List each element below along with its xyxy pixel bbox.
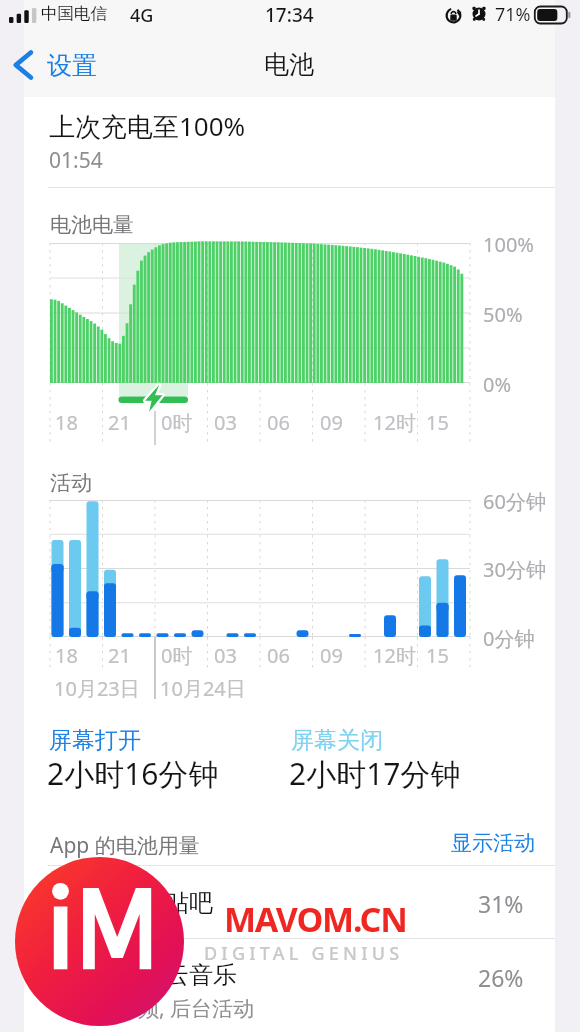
staticText: App 的电池用量 — [50, 831, 200, 860]
staticText: 0% — [483, 371, 512, 398]
staticText: 18 — [55, 642, 78, 669]
staticText: 50% — [483, 301, 523, 328]
staticText: 60分钟 — [483, 488, 546, 515]
staticText: 06 — [267, 409, 290, 436]
staticText: 21 — [108, 409, 131, 436]
staticText: 10月23日 — [54, 675, 140, 702]
staticText: 26% — [478, 962, 524, 993]
staticText: 4G — [130, 3, 154, 28]
staticText: 01:54 — [49, 146, 103, 175]
staticText: 09 — [320, 409, 343, 436]
staticText: 31% — [478, 888, 524, 919]
staticText: 03 — [214, 409, 237, 436]
button[interactable]: 网易云音乐 — [24, 940, 555, 1012]
staticText: 设置 — [47, 50, 97, 81]
staticText: DIGITAL GENIUS — [204, 941, 404, 966]
staticText: 显示活动 — [451, 830, 535, 856]
staticText: 0分钟 — [483, 625, 535, 652]
staticText: 2小时16分钟 — [47, 753, 219, 794]
staticText: 2小时17分钟 — [289, 753, 461, 794]
staticText: 15 — [426, 409, 449, 436]
staticText: 15 — [426, 642, 449, 669]
staticText: 活动 — [50, 470, 92, 496]
staticText: MAVOM.CN — [224, 896, 407, 942]
staticText: 中国电信 — [41, 3, 107, 24]
staticText: 百度贴吧 — [117, 888, 213, 918]
staticText: 03 — [214, 642, 237, 669]
other: Alarm — [470, 5, 488, 23]
staticText: 电池 — [264, 49, 314, 80]
staticText: 屏幕关闭 — [291, 726, 383, 755]
staticText: 0时 — [161, 642, 193, 669]
staticText: 100% — [483, 231, 534, 258]
staticText: 71% — [495, 2, 531, 27]
staticText: 网易云音乐 — [117, 960, 237, 990]
staticText: 音频, 后台活动 — [117, 994, 255, 1023]
other: Rotation lock — [445, 7, 462, 24]
staticText: 17:34 — [265, 2, 314, 28]
button[interactable]: 设置 — [8, 44, 97, 86]
staticText: 21 — [108, 642, 131, 669]
staticText: 09 — [320, 642, 343, 669]
staticText: 06 — [267, 642, 290, 669]
button[interactable]: 百度贴吧 — [24, 866, 555, 938]
staticText: 0时 — [161, 409, 193, 436]
button[interactable] — [24, 98, 555, 187]
staticText: 10月24日 — [160, 675, 246, 702]
staticText: 30分钟 — [483, 556, 546, 583]
staticText: 电池电量 — [50, 212, 134, 238]
staticText: 12时 — [373, 409, 416, 436]
staticText: 屏幕打开 — [49, 726, 141, 755]
button[interactable]: 显示活动 — [441, 824, 545, 862]
staticText: 18 — [55, 409, 78, 436]
staticText: 12时 — [373, 642, 416, 669]
staticText: 上次充电至100% — [49, 108, 246, 144]
